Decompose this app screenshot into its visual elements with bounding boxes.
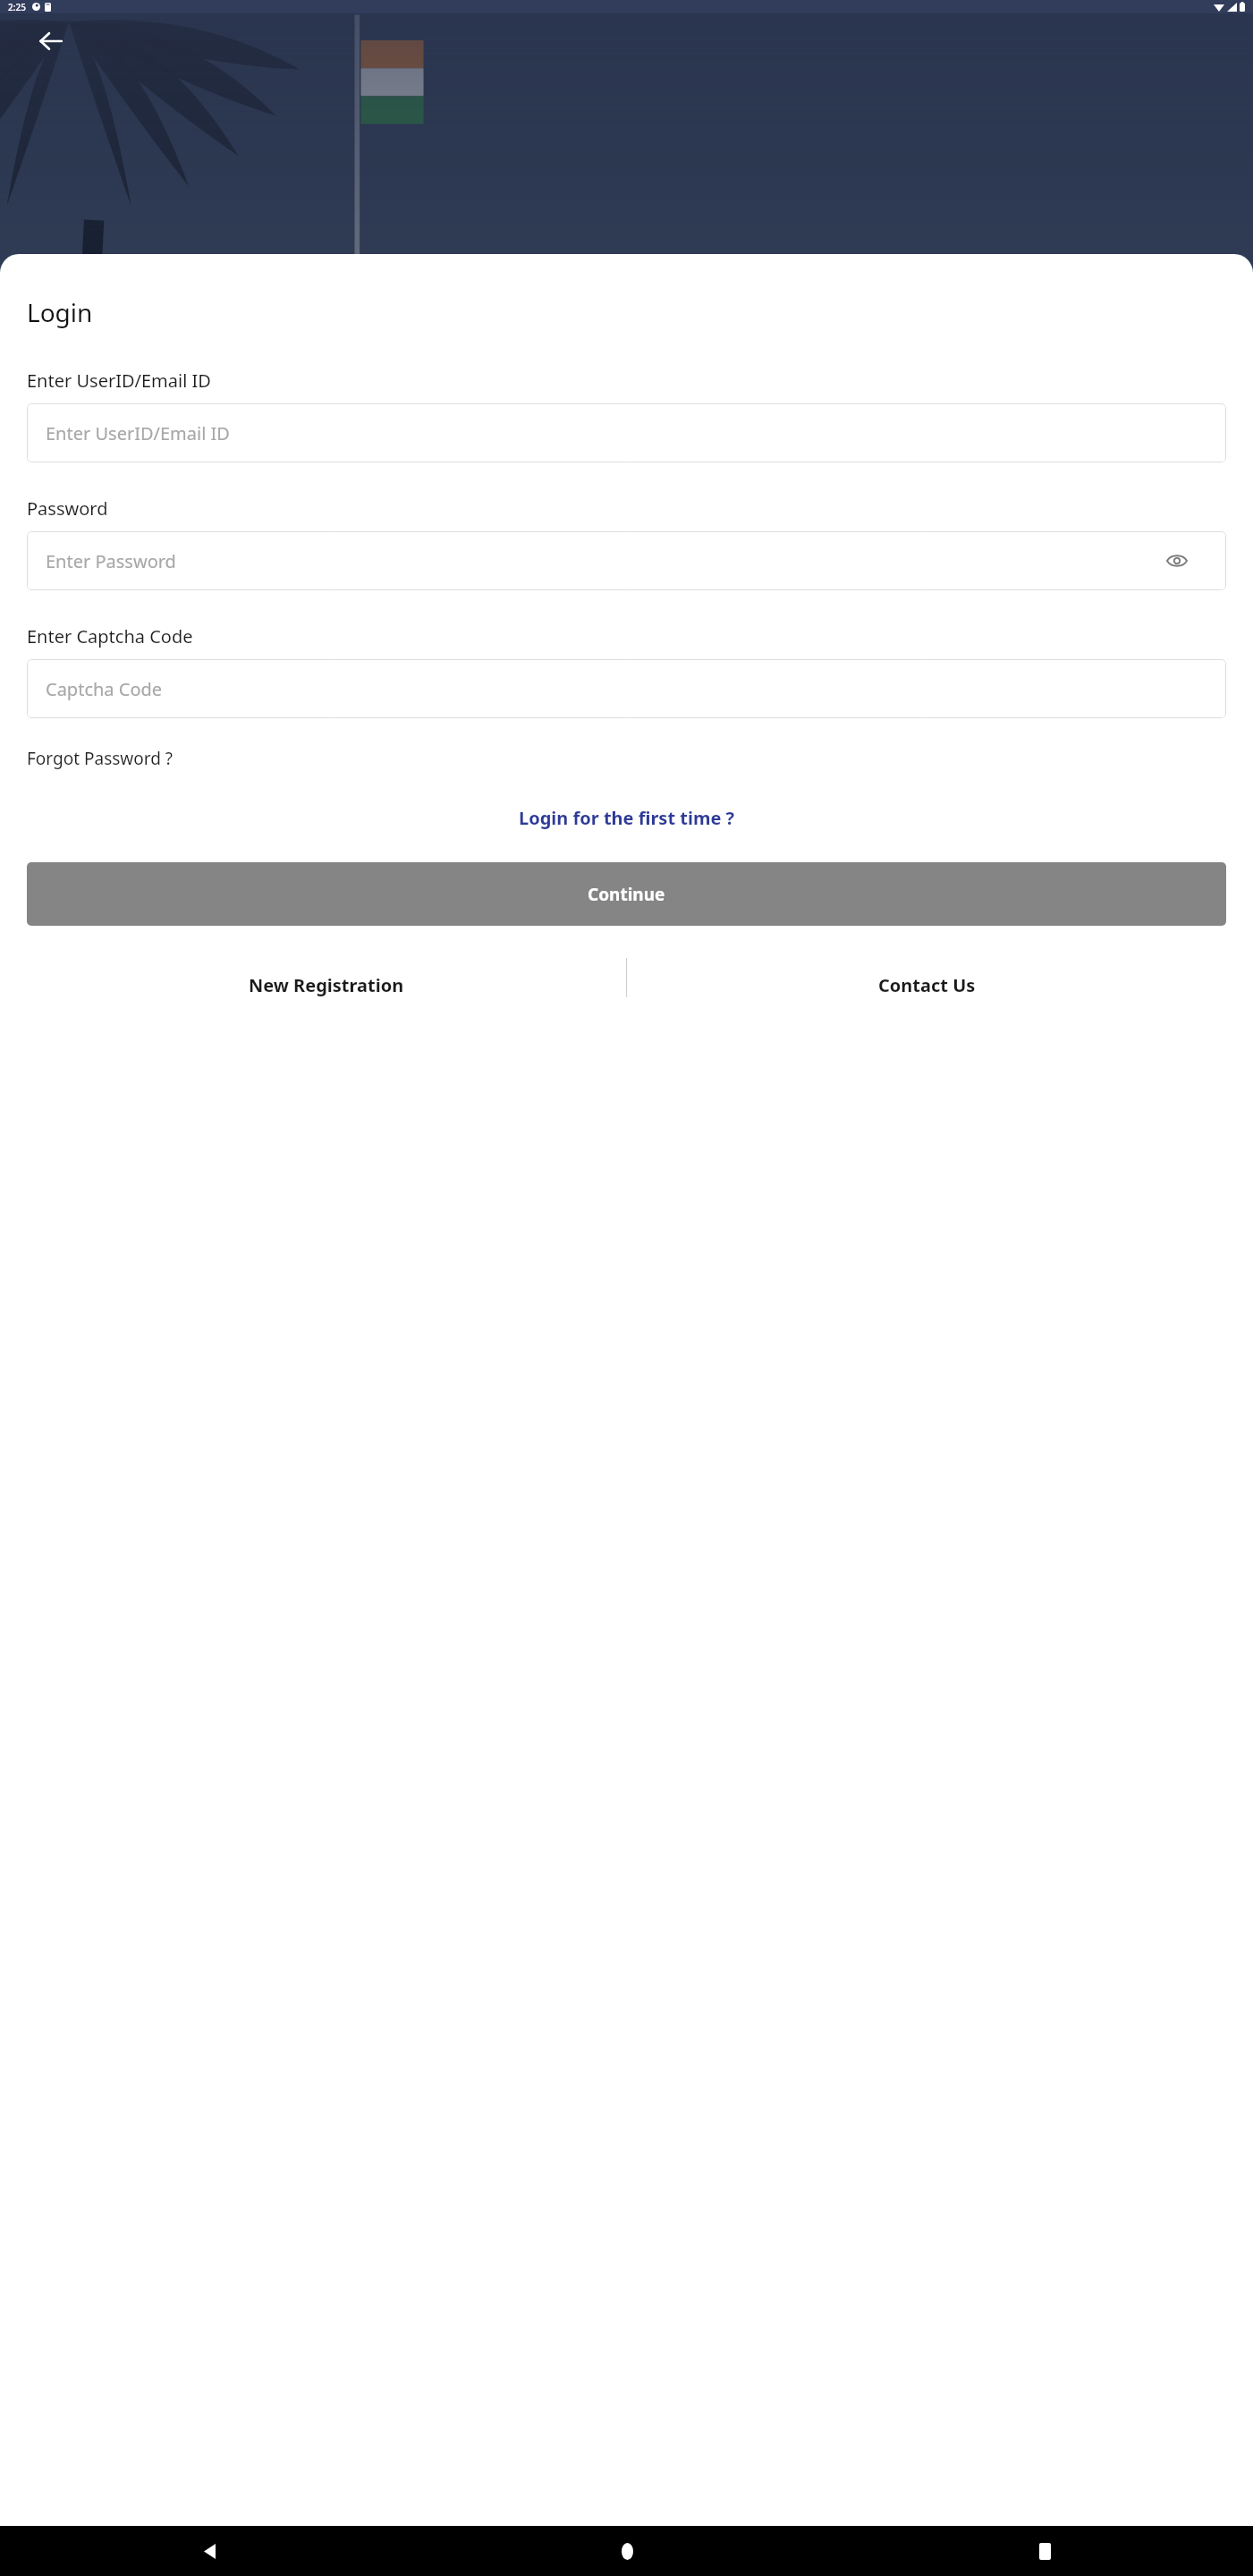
staticText: Enter UserID/Email ID <box>46 421 230 445</box>
staticText: New Registration <box>249 973 404 997</box>
button[interactable]: Continue <box>27 862 1226 926</box>
staticText: Enter UserID/Email ID <box>27 369 211 393</box>
staticText: Captcha Code <box>46 677 163 701</box>
staticText: Forgot Password ? <box>27 747 174 770</box>
staticText: Enter Password <box>46 549 176 573</box>
staticText: Contact Us <box>878 973 976 997</box>
staticText: Login for the first time ? <box>519 806 735 830</box>
staticText: Continue <box>588 883 665 906</box>
button[interactable]: Enter Password <box>27 531 1226 590</box>
button[interactable]: Back <box>194 2536 224 2566</box>
button[interactable]: Enter UserID/Email ID <box>27 403 1226 462</box>
button[interactable]: Forgot Password ? <box>27 747 174 770</box>
button[interactable]: New Registration <box>27 958 626 997</box>
button[interactable]: Show password <box>1164 547 1190 574</box>
button[interactable]: Contact Us <box>627 958 1226 997</box>
button[interactable]: Back <box>30 20 72 63</box>
staticText: Login <box>27 295 93 329</box>
button[interactable]: Home <box>612 2536 642 2566</box>
staticText: 2:25 <box>8 1 26 13</box>
staticText: Member Portal <box>68 670 229 699</box>
staticText: Parliament of India <box>68 629 343 668</box>
staticText: Password <box>27 496 108 521</box>
staticText: Enter Captcha Code <box>27 624 193 648</box>
button[interactable]: Recent apps <box>1029 2536 1060 2566</box>
button[interactable]: Login for the first time ? <box>27 806 1226 830</box>
button[interactable]: Captcha Code <box>27 659 1226 718</box>
